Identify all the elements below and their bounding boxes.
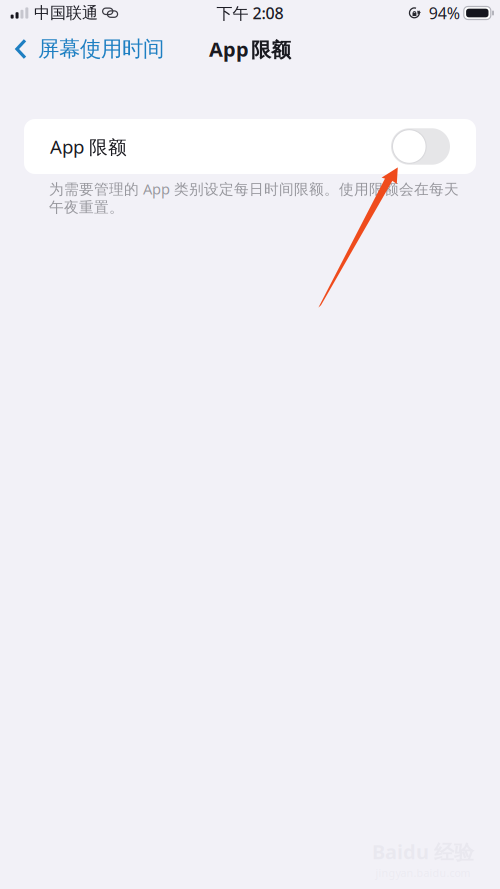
staticText: 94%	[429, 2, 460, 24]
staticText: 为需要管理的 App 类别设定每日时间限额。使用限额会在每天午夜重置。	[49, 179, 459, 216]
staticText: 中国联通	[34, 3, 98, 23]
staticText: App 限额	[209, 36, 291, 62]
staticText: Baidu 经验	[372, 838, 474, 865]
staticText: 下午 2:08	[216, 2, 283, 24]
staticText: App 限额	[50, 134, 127, 159]
staticText: 屏幕使用时间	[38, 36, 164, 62]
button[interactable]: App 限额	[24, 119, 476, 174]
button[interactable]: 屏幕使用时间	[0, 30, 164, 68]
